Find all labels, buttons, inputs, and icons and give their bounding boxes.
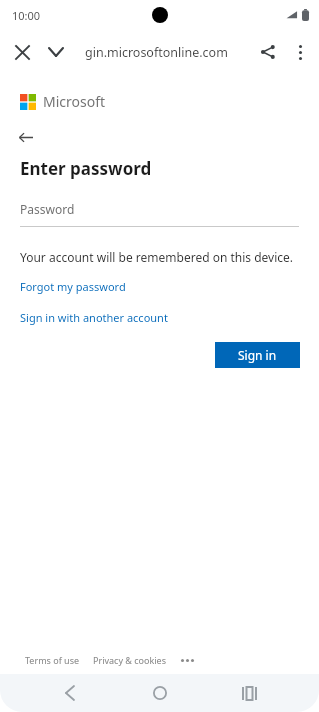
button[interactable]: More bbox=[178, 651, 196, 669]
button[interactable]: Terms of use bbox=[25, 654, 80, 666]
button[interactable]: Back bbox=[50, 674, 90, 712]
button[interactable]: Password bbox=[20, 201, 299, 227]
staticText: Enter password bbox=[20, 157, 152, 180]
staticText: Terms of use bbox=[25, 654, 80, 666]
button[interactable]: Privacy & cookies bbox=[93, 654, 167, 666]
button[interactable]: Back bbox=[13, 124, 39, 150]
staticText: 10:00 bbox=[12, 8, 41, 23]
staticText: Sign in bbox=[238, 347, 277, 363]
button[interactable]: Sign in with another account bbox=[20, 310, 168, 325]
button[interactable]: Sign in bbox=[215, 342, 300, 368]
staticText: Privacy & cookies bbox=[93, 654, 167, 666]
button[interactable]: Forgot my password bbox=[20, 279, 126, 294]
button[interactable]: Home bbox=[140, 674, 180, 712]
button[interactable]: Menu bbox=[285, 37, 315, 67]
staticText: Forgot my password bbox=[20, 279, 126, 294]
button[interactable]: Recent apps bbox=[229, 674, 269, 712]
staticText: Password bbox=[20, 201, 75, 217]
staticText: gin.microsoftonline.com bbox=[85, 44, 228, 61]
staticText: Your account will be remembered on this … bbox=[20, 249, 294, 265]
button[interactable]: Expand bbox=[42, 38, 70, 66]
button[interactable]: Share bbox=[253, 37, 283, 67]
staticText: Sign in with another account bbox=[20, 310, 168, 325]
button[interactable]: Close bbox=[8, 38, 36, 66]
staticText: Microsoft bbox=[43, 92, 106, 111]
